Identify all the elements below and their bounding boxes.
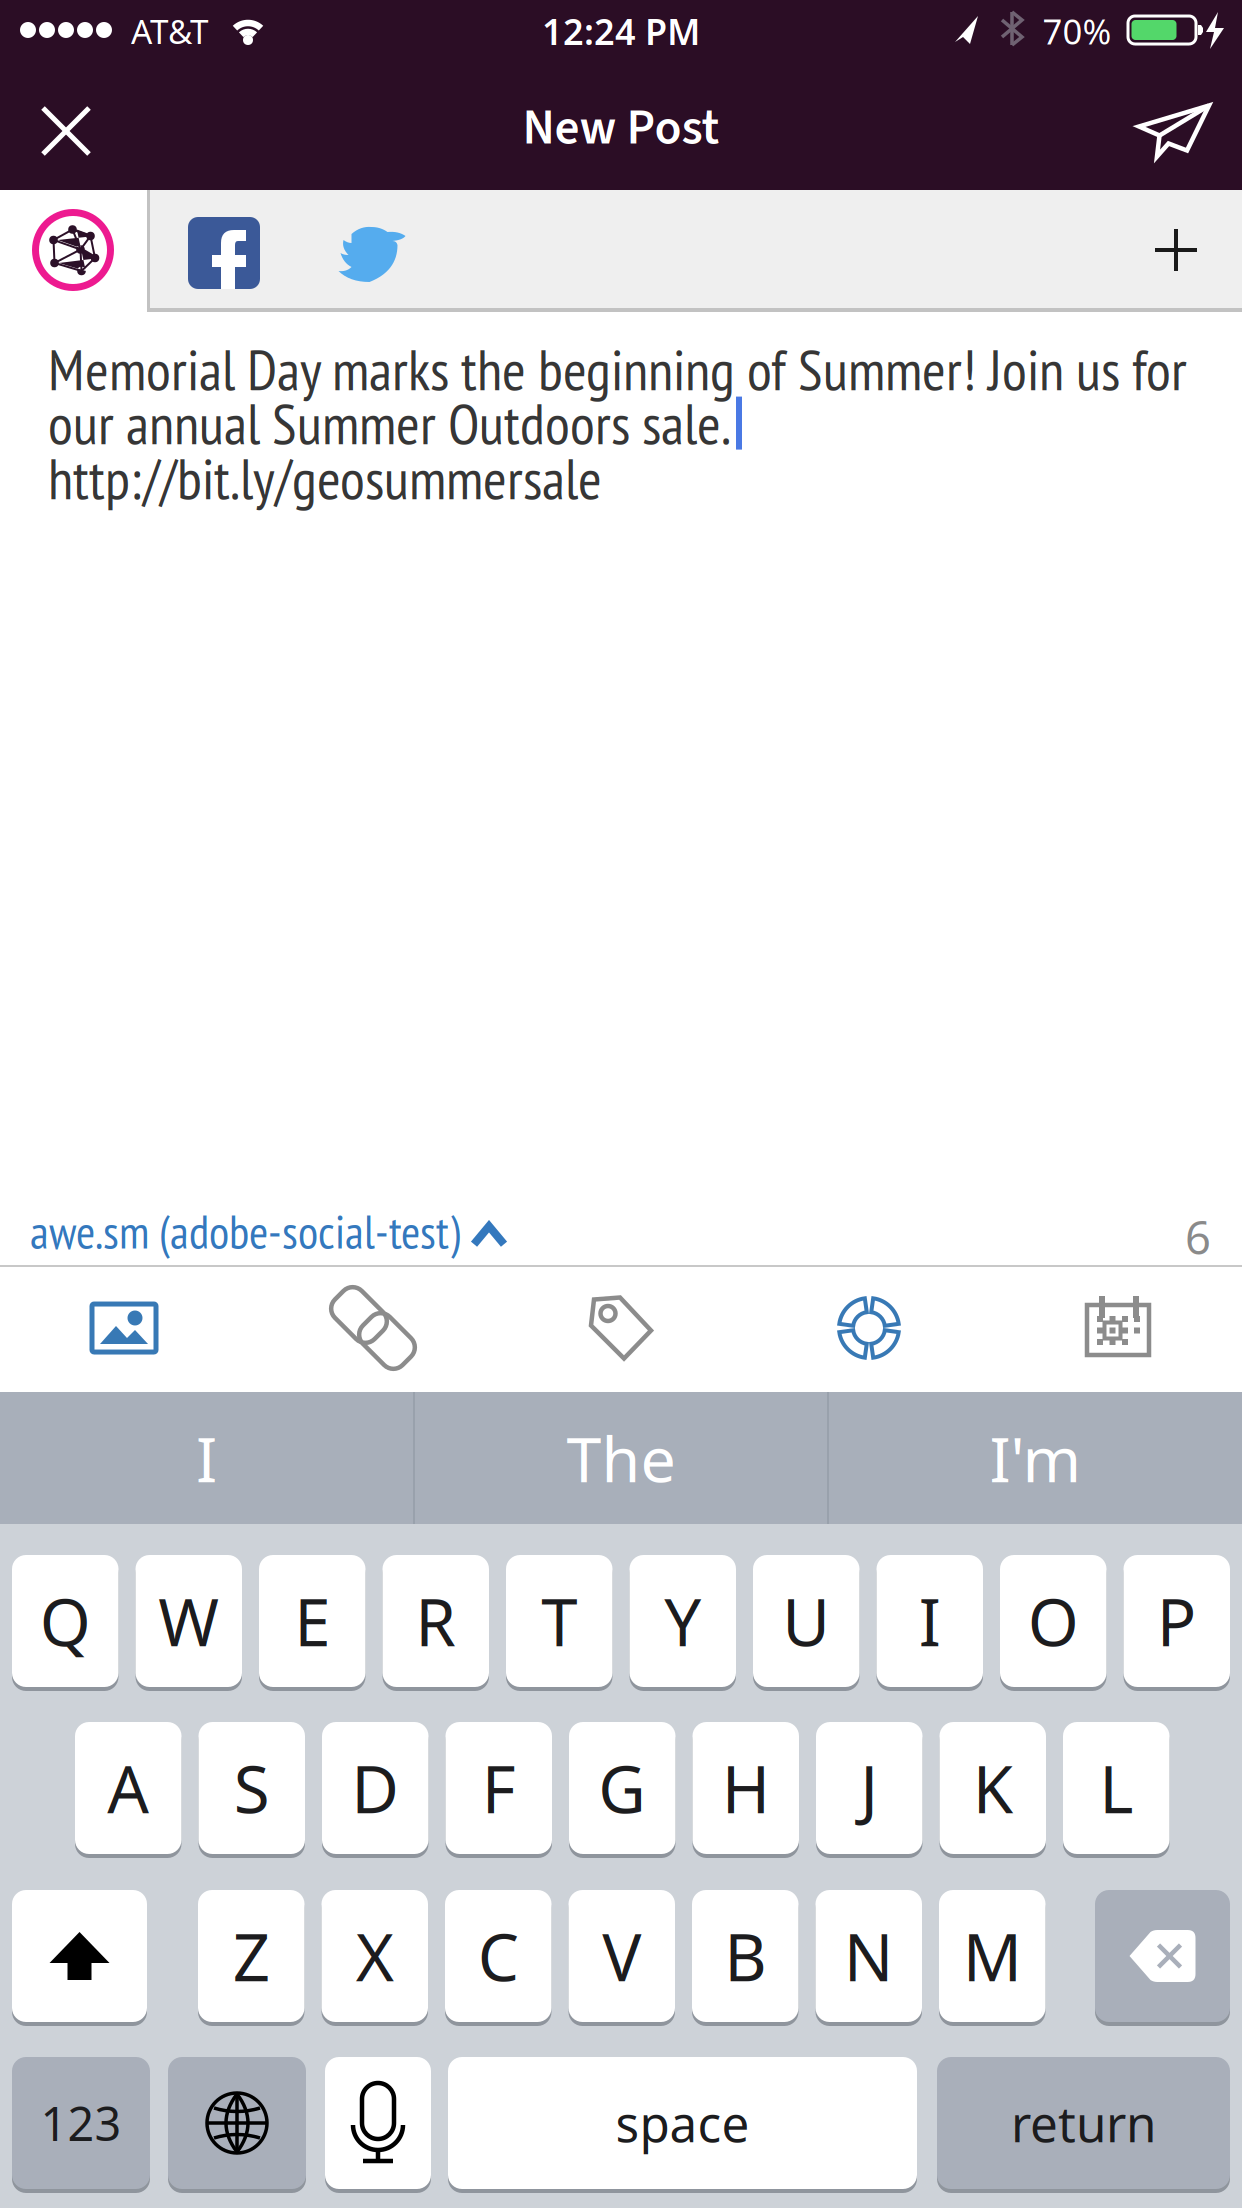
button[interactable]: Twitter account [336,223,411,285]
staticText: 123 [40,2092,121,2154]
staticText: http://bit.ly/geosummersale [48,441,602,515]
button[interactable]: R [382,1553,489,1689]
button[interactable]: Close [23,88,109,174]
staticText: Q [40,1578,91,1664]
staticText: 12:24 PM [542,7,700,55]
staticText: I [196,1416,217,1500]
staticText: G [598,1745,646,1831]
staticText: The [566,1416,675,1500]
staticText: L [1099,1745,1133,1831]
staticText: 70% [1042,8,1111,54]
staticText: E [294,1578,330,1664]
staticText: 6 [1185,1207,1211,1267]
staticText: O [1028,1578,1079,1664]
button[interactable]: The [415,1392,827,1524]
button[interactable]: W [135,1553,242,1689]
button[interactable]: Send [1138,103,1211,159]
staticText: Y [664,1578,701,1664]
button[interactable]: K [939,1720,1046,1856]
button[interactable]: C [445,1888,551,2024]
button[interactable]: X [321,1888,428,2024]
staticText: AT&T [131,9,209,53]
button[interactable]: I'm [829,1392,1242,1524]
button[interactable]: I [0,1392,413,1524]
staticText: return [1011,2090,1156,2156]
button[interactable]: Y [629,1553,736,1689]
button[interactable]: G [569,1720,675,1856]
staticText: N [844,1913,894,1999]
staticText: W [158,1578,219,1664]
staticText: K [973,1745,1013,1831]
button[interactable]: Dictate [325,2055,431,2191]
staticText: J [860,1745,878,1831]
button[interactable]: Next keyboard [168,2055,306,2191]
staticText: I [919,1578,941,1664]
button[interactable]: I [876,1553,983,1689]
staticText: M [963,1913,1022,1999]
button[interactable]: Schedule [1087,1296,1149,1360]
staticText: H [722,1745,770,1831]
staticText: P [1157,1578,1197,1664]
button[interactable]: O [1000,1553,1106,1689]
button[interactable]: Targeting [837,1296,901,1360]
button[interactable]: Delete [1095,1888,1230,2024]
staticText: Memorial Day marks the beginning of Summ… [48,332,1187,406]
button[interactable]: Add photo [92,1301,156,1355]
staticText: S [234,1745,270,1831]
staticText: D [351,1745,399,1831]
staticText: Z [233,1913,270,1999]
button[interactable]: Q [12,1553,118,1689]
staticText: X [356,1913,394,1999]
button[interactable]: L [1063,1720,1169,1856]
button[interactable]: Add tag [590,1296,652,1359]
button[interactable]: F [445,1720,552,1856]
button[interactable]: Selected account [35,212,111,288]
staticText: C [478,1913,519,1999]
staticText: U [782,1578,830,1664]
staticText: New Post [522,93,719,163]
button[interactable]: D [322,1720,428,1856]
button[interactable]: V [568,1888,675,2024]
button[interactable]: Z [198,1888,304,2024]
button[interactable]: A [75,1720,181,1856]
button[interactable]: B [692,1888,798,2024]
staticText: B [724,1913,766,1999]
button[interactable]: return [937,2055,1230,2191]
staticText: F [482,1745,516,1831]
button[interactable]: awe.sm (adobe-social-test) [30,1201,504,1261]
button[interactable]: Facebook account [188,217,260,289]
button[interactable]: space [448,2055,917,2191]
staticText: A [107,1745,149,1831]
button[interactable]: E [259,1553,365,1689]
staticText: R [415,1578,456,1664]
staticText: V [602,1913,641,1999]
button[interactable]: N [815,1888,922,2024]
staticText: awe.sm (adobe-social-test) [30,1201,460,1261]
button[interactable]: T [506,1553,612,1689]
button[interactable]: S [198,1720,305,1856]
staticText: our annual Summer Outdoors sale. [48,386,731,460]
button[interactable]: U [753,1553,859,1689]
button[interactable]: P [1123,1553,1230,1689]
staticText: I'm [989,1416,1081,1500]
button[interactable]: Shift [12,1888,147,2024]
button[interactable]: M [939,1888,1045,2024]
staticText: space [615,2090,749,2156]
button[interactable]: Add account [1155,229,1197,271]
button[interactable]: 123 [12,2055,150,2191]
staticText: T [541,1578,577,1664]
button[interactable]: J [816,1720,922,1856]
button[interactable]: Add link [338,1297,408,1359]
button[interactable]: H [692,1720,799,1856]
